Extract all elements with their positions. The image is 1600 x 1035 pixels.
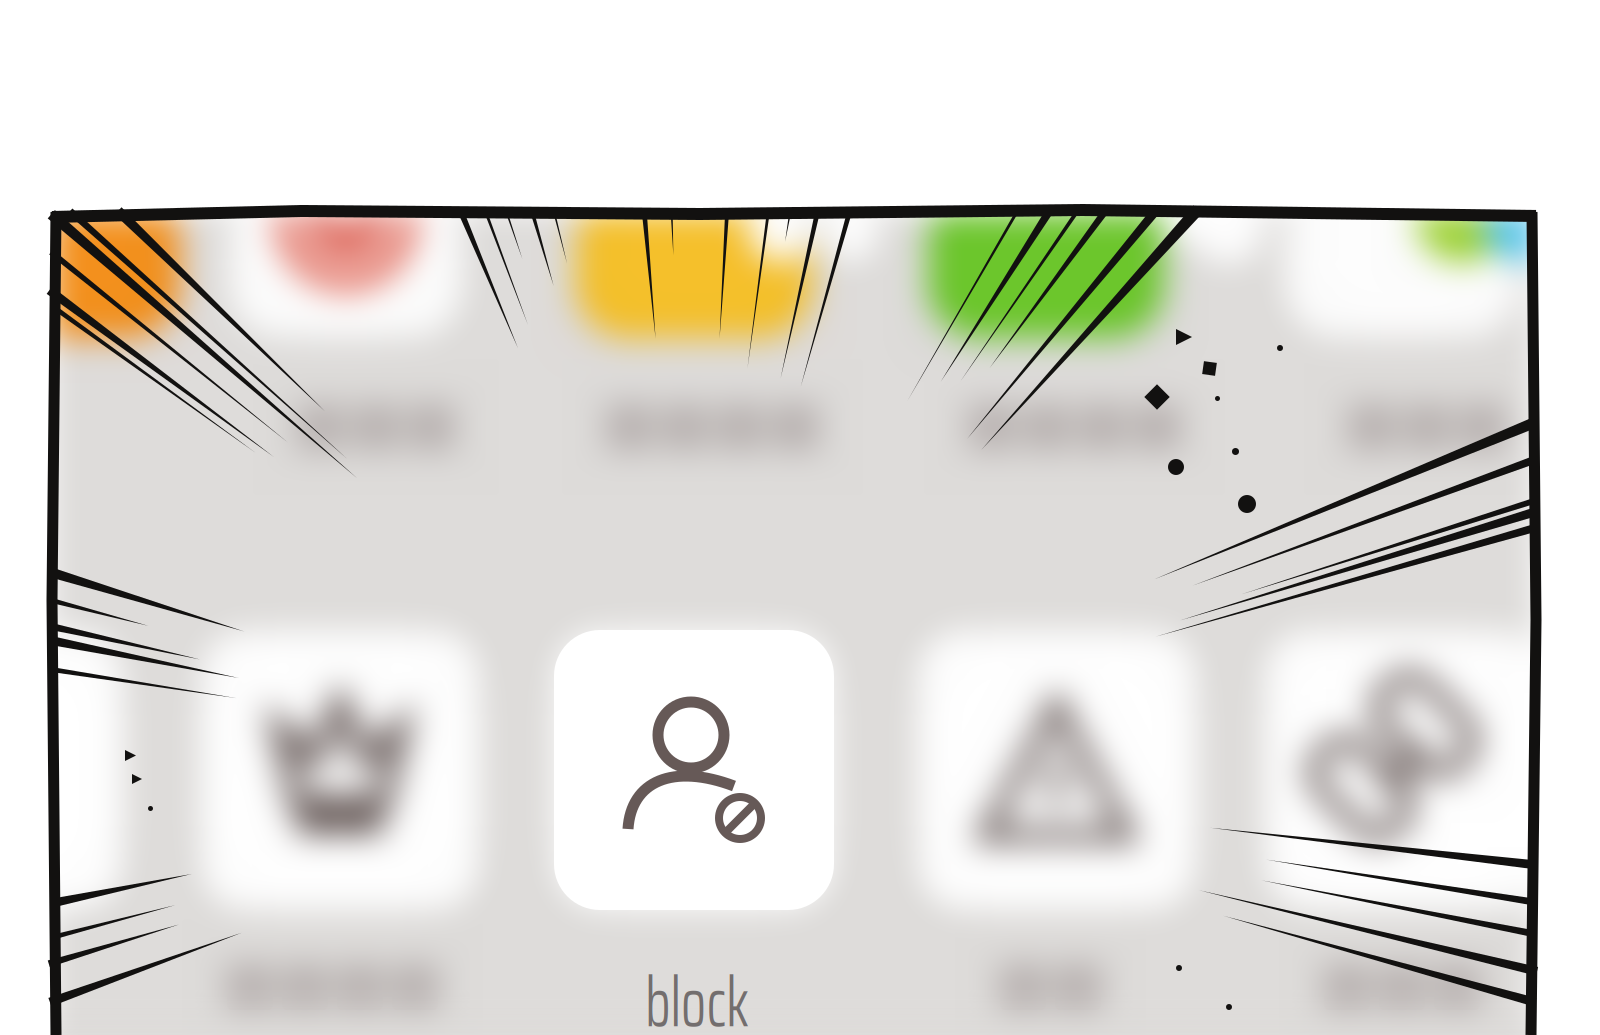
staticText: block: [633, 947, 760, 1035]
button[interactable]: block: [554, 630, 834, 910]
